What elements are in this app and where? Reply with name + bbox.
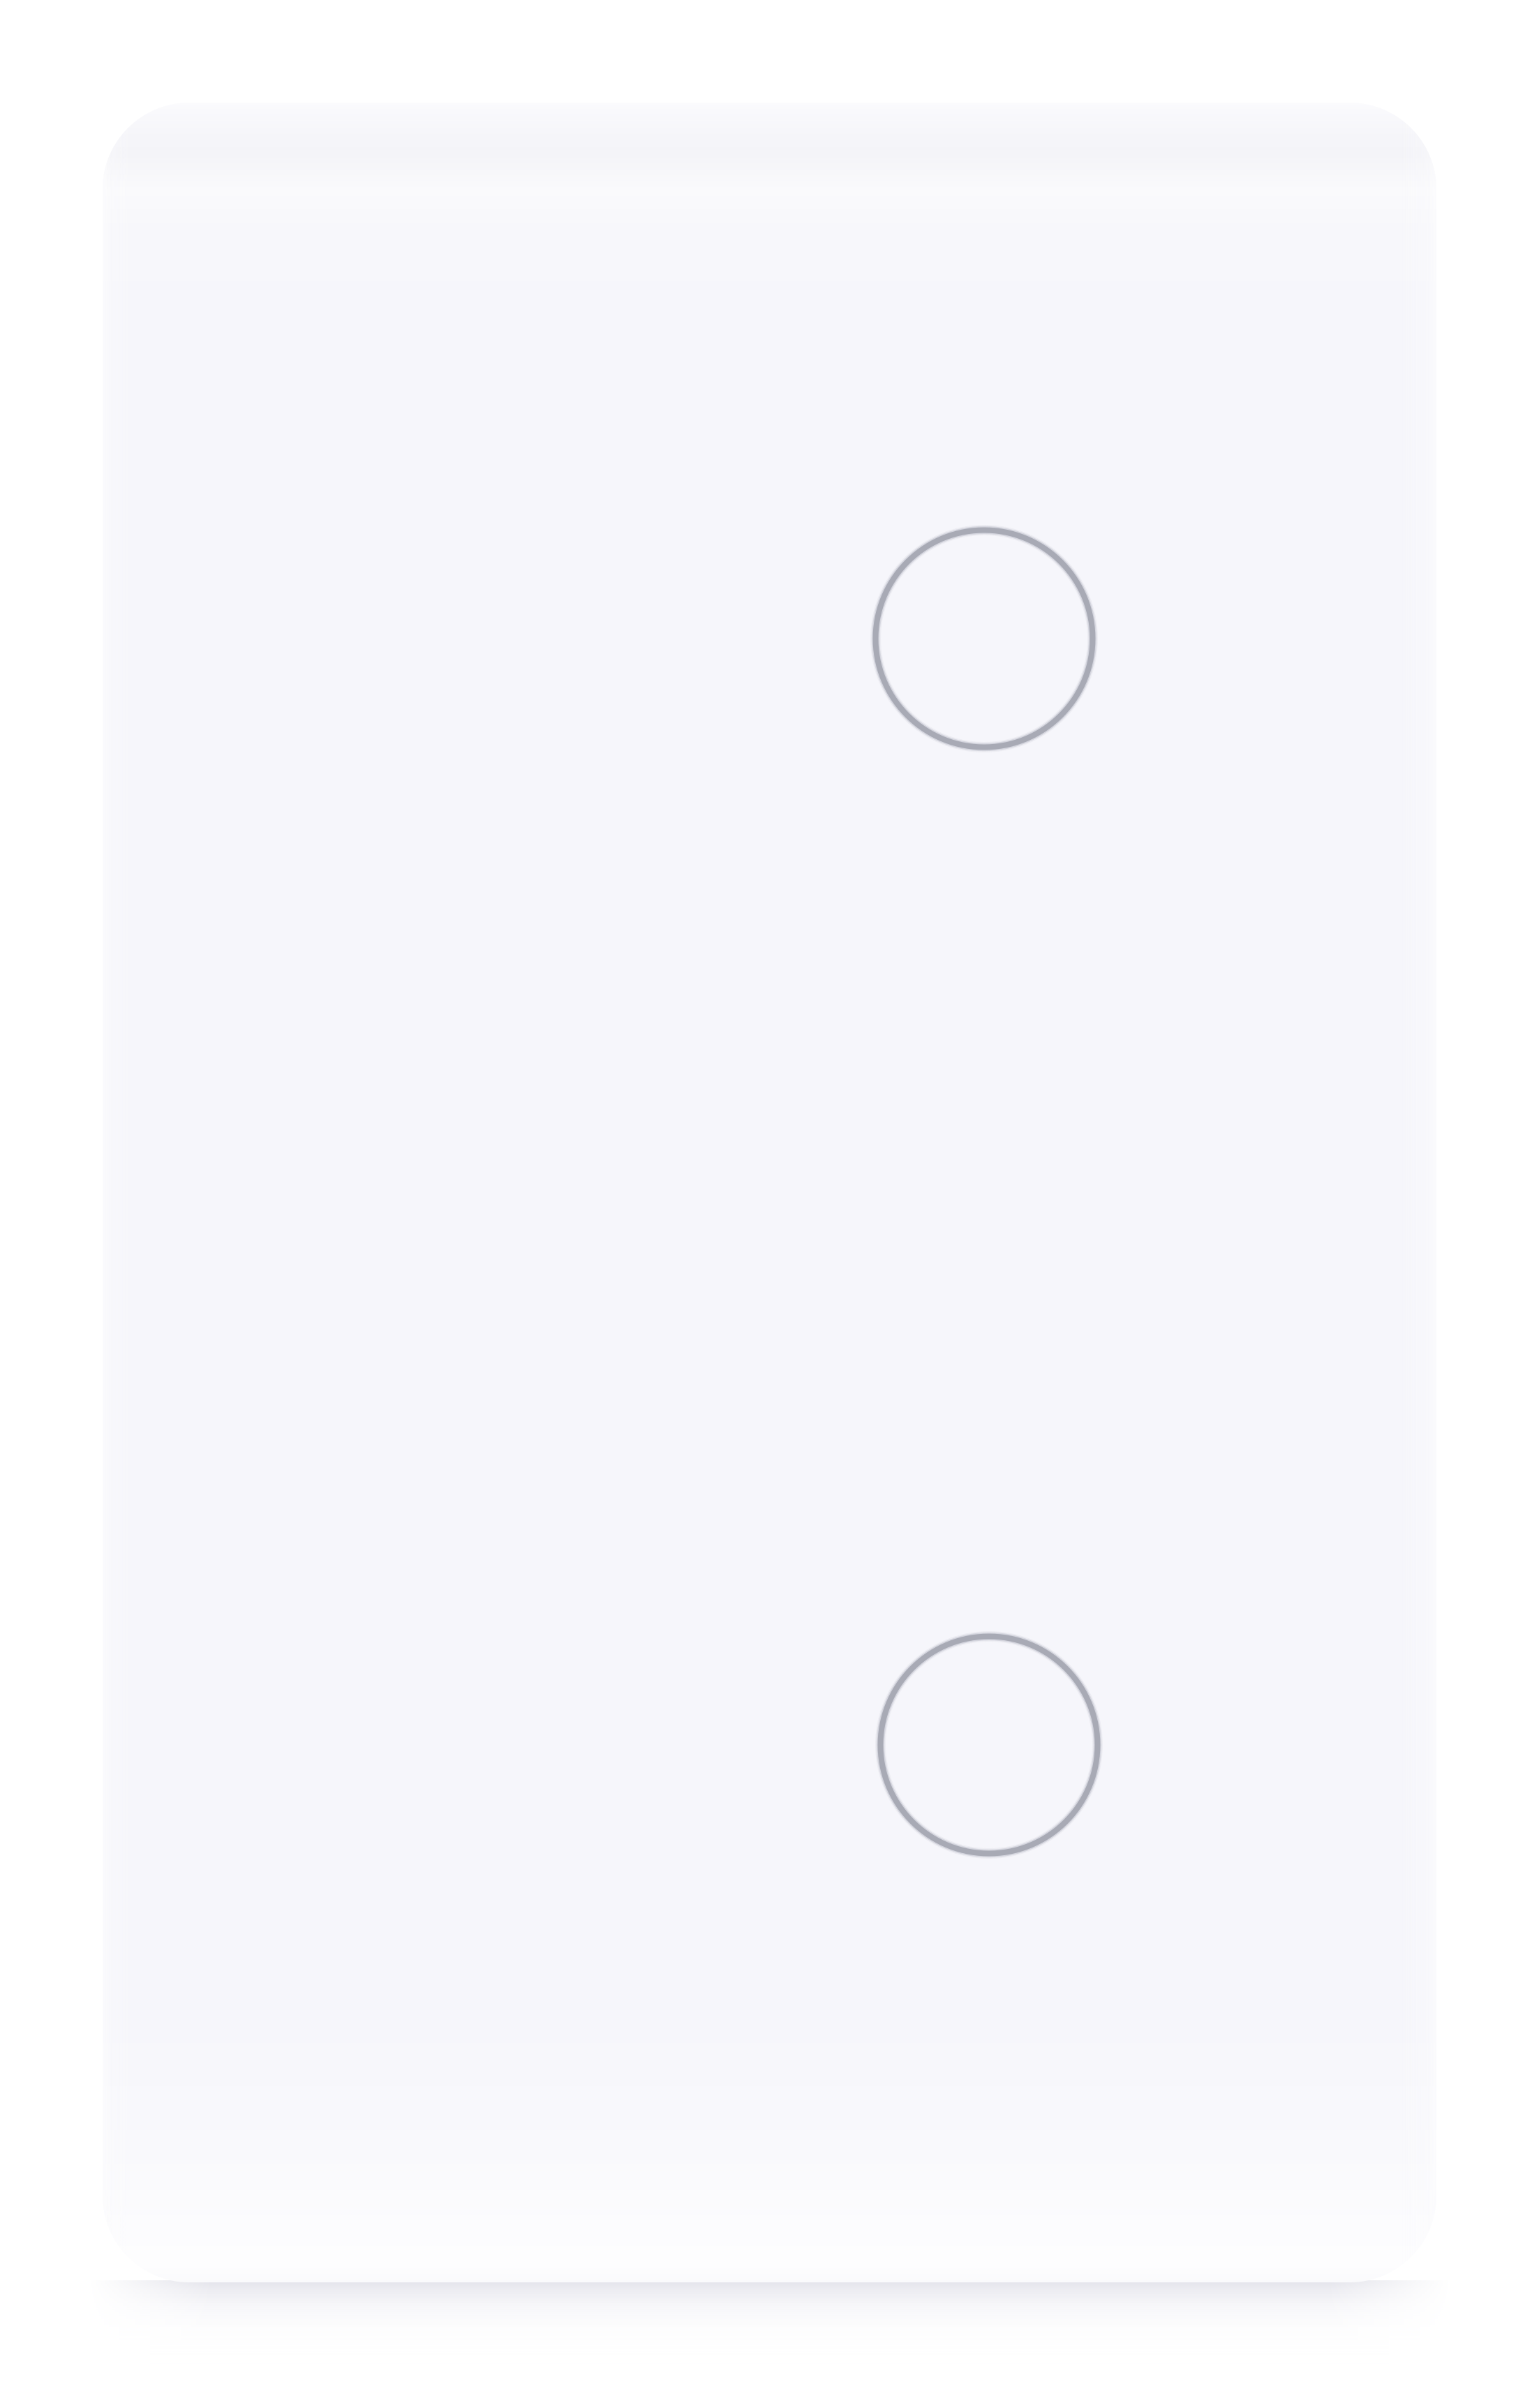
button[interactable]: Bottom switch [872,1628,1106,1862]
button[interactable]: Top switch [867,522,1101,756]
